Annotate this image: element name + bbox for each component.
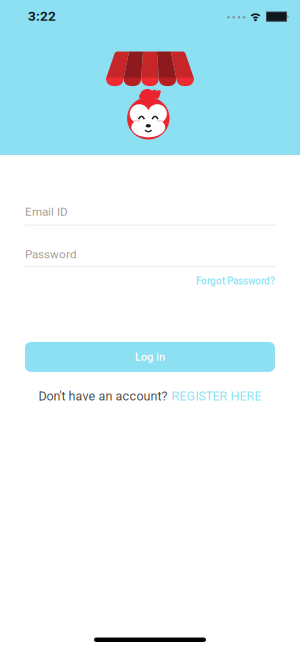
button[interactable]: Email ID (25, 205, 275, 226)
staticText: Password (25, 248, 77, 261)
button[interactable]: Password (25, 248, 275, 267)
staticText: Log in (135, 350, 165, 363)
staticText: 3:22 (28, 8, 56, 24)
staticText: REGISTER HERE (171, 389, 261, 404)
button[interactable]: REGISTER HERE (171, 389, 261, 404)
button[interactable]: Log in (25, 342, 275, 372)
staticText: Email ID (25, 205, 68, 219)
staticText: Forgot Password? (196, 275, 275, 287)
staticText: Don't have an account? (38, 389, 167, 404)
button[interactable]: Forgot Password? (196, 275, 275, 287)
